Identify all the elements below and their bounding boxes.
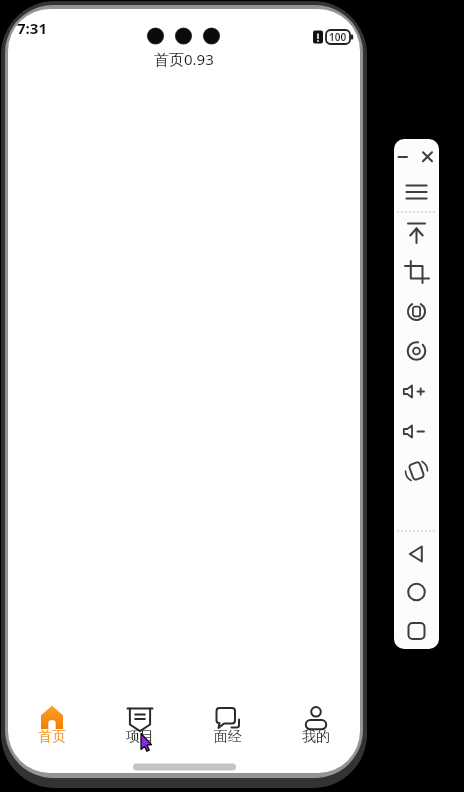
button[interactable] [398,261,435,283]
button[interactable]: 面经 [184,702,272,762]
staticText: 项目 [126,728,154,746]
staticText: 面经 [214,728,242,746]
button[interactable] [398,301,435,323]
button[interactable] [398,221,435,243]
button[interactable] [398,381,435,403]
staticText: 我的 [302,728,330,746]
button[interactable]: 项目 [96,702,184,762]
button[interactable]: 首页 [8,702,96,762]
staticText: 7:31 [17,18,47,38]
button[interactable] [398,582,435,604]
staticText: 首页 [38,728,66,746]
button[interactable] [398,461,435,483]
button[interactable]: 我的 [272,702,360,762]
button[interactable] [398,182,435,204]
button[interactable] [398,421,435,443]
button[interactable] [398,544,435,566]
button[interactable] [398,621,435,643]
staticText: 首页0.93 [154,49,214,69]
staticText: 100 [329,30,347,44]
button[interactable] [398,341,435,363]
button[interactable] [398,146,435,168]
